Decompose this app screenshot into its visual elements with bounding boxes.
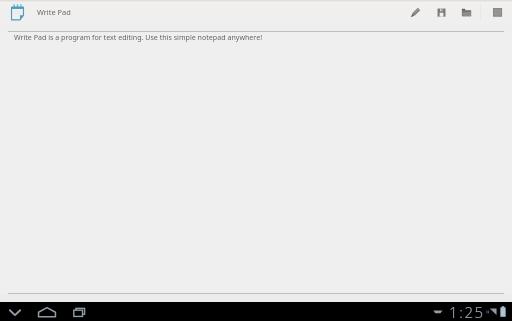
button[interactable]: Open [453,0,479,24]
button[interactable]: Write Pad [0,0,79,24]
staticText: 1:25 [449,302,485,321]
staticText: Write Pad [37,7,71,17]
button[interactable]: Save [428,0,454,24]
button[interactable]: Back [1,302,29,321]
button[interactable]: Recent apps [65,302,93,321]
button[interactable]: Home [32,302,62,321]
button[interactable]: More options [484,0,510,24]
button[interactable]: Edit [402,0,428,24]
staticText: Write Pad is a program for text editing.… [14,32,263,42]
